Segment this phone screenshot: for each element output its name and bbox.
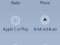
staticText: Radio bbox=[11, 0, 20, 5]
button[interactable]: App bbox=[11, 44, 20, 45]
button[interactable]: Apple CarPlay bbox=[11, 16, 20, 25]
button[interactable]: Android Auto bbox=[40, 15, 50, 25]
staticText: Apple CarPlay bbox=[3, 26, 28, 32]
staticText: Android Auto bbox=[33, 26, 56, 32]
staticText: Phone bbox=[40, 0, 50, 5]
button[interactable]: App bbox=[40, 44, 50, 45]
